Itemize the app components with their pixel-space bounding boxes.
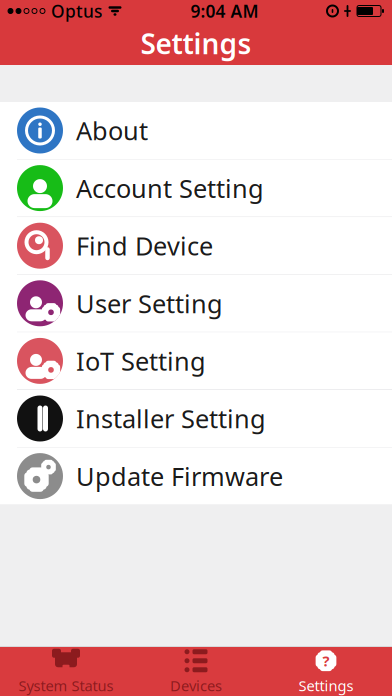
staticText: ? (322, 651, 329, 670)
button[interactable]: Account Setting (0, 160, 392, 217)
button[interactable]: IoT Setting (0, 332, 392, 390)
button[interactable]: ? (261, 647, 391, 696)
button[interactable]: System Status (1, 647, 131, 696)
staticText: Find Device (76, 229, 213, 262)
staticText: Settings (140, 25, 251, 62)
button[interactable]: Find Device (0, 217, 392, 275)
button[interactable]: User Setting (0, 275, 392, 332)
button[interactable]: Installer Setting (0, 390, 392, 448)
button[interactable]: Update Firmware (0, 448, 392, 505)
staticText: Installer Setting (76, 402, 266, 435)
staticText: Devices (170, 676, 222, 695)
button[interactable]: Devices (131, 647, 261, 696)
staticText: About (76, 114, 148, 147)
staticText: Settings (298, 676, 353, 695)
staticText: 9:04 AM (190, 0, 258, 22)
staticText: IoT Setting (76, 344, 206, 378)
staticText: Update Firmware (76, 459, 283, 493)
button[interactable]: About (0, 102, 392, 160)
staticText: User Setting (76, 286, 223, 320)
staticText: System Status (18, 676, 113, 695)
staticText: Optus (51, 0, 102, 22)
staticText: Account Setting (76, 171, 264, 205)
